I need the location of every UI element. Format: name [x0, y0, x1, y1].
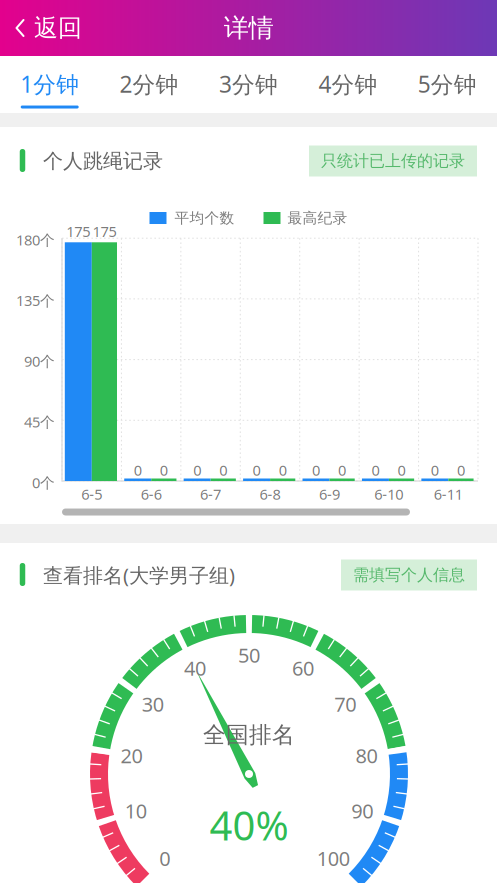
staticText: 最高纪录 — [287, 209, 347, 227]
staticText: 135个 — [16, 291, 55, 310]
staticText: 平均个数 — [174, 209, 234, 227]
staticText: 175 — [66, 221, 90, 241]
staticText: 返回 — [34, 13, 82, 43]
staticText: 10 — [125, 797, 147, 824]
staticText: 6-6 — [141, 484, 162, 504]
staticText: 40% — [209, 798, 288, 851]
staticText: 查看排名(大学男子组) — [43, 562, 235, 588]
staticText: 80 — [355, 742, 377, 769]
staticText: 6-8 — [259, 484, 280, 504]
button[interactable]: 需填写个人信息 — [341, 559, 477, 590]
staticText: 0 — [160, 460, 168, 480]
button[interactable]: 4分钟 — [298, 56, 398, 113]
staticText: 2分钟 — [120, 69, 179, 99]
staticText: 0 — [279, 460, 287, 480]
staticText: 0 — [193, 460, 201, 480]
button[interactable]: 5分钟 — [398, 56, 497, 113]
staticText: 0 — [253, 460, 261, 480]
staticText: 6-11 — [434, 484, 463, 504]
staticText: 0 — [431, 460, 439, 480]
staticText: 175 — [92, 221, 116, 241]
staticText: 0 — [457, 460, 465, 480]
staticText: 4分钟 — [318, 69, 377, 99]
staticText: 90 — [351, 797, 373, 824]
button[interactable]: 1分钟 — [0, 56, 99, 113]
staticText: 0 — [338, 460, 346, 480]
staticText: 30 — [142, 691, 164, 717]
staticText: 45个 — [24, 412, 55, 432]
staticText: 详情 — [223, 12, 273, 43]
staticText: 0 — [397, 460, 405, 480]
staticText: 0 — [371, 460, 379, 480]
staticText: 100 — [317, 845, 350, 871]
button[interactable]: 3分钟 — [199, 56, 298, 113]
staticText: 20 — [120, 742, 142, 769]
staticText: 只统计已上传的记录 — [321, 151, 465, 171]
staticText: 90个 — [24, 351, 55, 371]
staticText: 需填写个人信息 — [353, 565, 465, 585]
button[interactable]: 只统计已上传的记录 — [309, 145, 477, 176]
staticText: 50 — [238, 642, 260, 668]
button[interactable]: 2分钟 — [99, 56, 199, 113]
staticText: 40 — [184, 655, 206, 681]
staticText: 60 — [292, 655, 314, 681]
staticText: 个人跳绳记录 — [43, 149, 163, 173]
staticText: 6-7 — [200, 484, 221, 504]
staticText: 3分钟 — [219, 69, 278, 99]
staticText: 0 — [219, 460, 227, 480]
staticText: 全国排名 — [203, 721, 295, 749]
button[interactable]: 返回 — [0, 0, 96, 56]
staticText: 1分钟 — [20, 69, 79, 99]
staticText: 6-10 — [374, 484, 403, 504]
staticText: 6-5 — [81, 484, 102, 504]
staticText: 180个 — [16, 230, 55, 249]
staticText: 0 — [312, 460, 320, 480]
staticText: 0 — [134, 460, 142, 480]
staticText: 0个 — [32, 473, 55, 492]
staticText: 5分钟 — [418, 69, 477, 99]
staticText: 70 — [334, 691, 356, 717]
staticText: 0 — [159, 845, 170, 871]
staticText: 6-9 — [319, 484, 340, 504]
